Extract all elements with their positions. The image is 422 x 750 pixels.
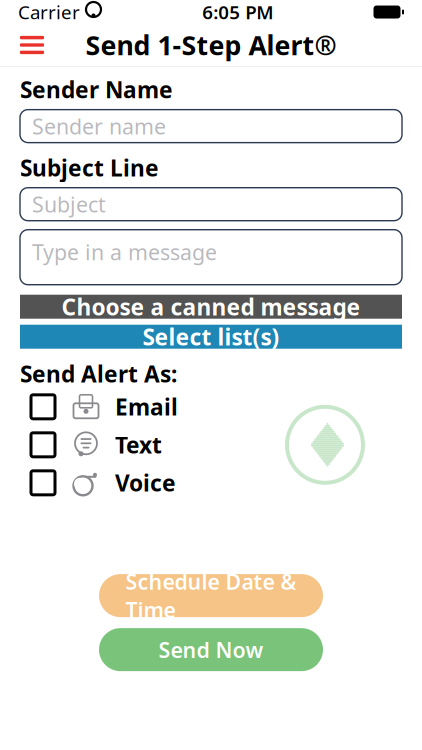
staticText: Select list(s) [142,322,279,352]
staticText: Choose a canned message [61,292,360,322]
button[interactable]: Menu [10,25,54,65]
button[interactable]: Schedule Date & Time [99,574,323,617]
staticText: 6:05 PM [202,0,273,24]
staticText: Send Alert As: [20,359,177,389]
staticText: Sender Name [20,74,173,105]
staticText: Type in a message [32,238,217,266]
button[interactable]: Select list(s) [0,325,422,349]
staticText: Email [115,392,178,422]
staticText: Schedule Date & Time [125,567,296,624]
staticText: Sender name [32,112,166,140]
staticText: Voice [115,468,176,498]
button[interactable]: Email [31,394,181,420]
staticText: Subject Line [20,153,159,183]
button[interactable]: Text [31,432,181,458]
staticText: Send Now [158,635,263,664]
button[interactable]: Choose a canned message [0,295,422,319]
staticText: Carrier [18,0,80,24]
staticText: Subject [32,190,106,218]
button[interactable]: Voice [31,470,181,496]
button[interactable]: Play [282,402,368,488]
staticText: Text [115,430,162,460]
button[interactable]: Send Now [99,628,323,671]
staticText: Send 1-Step Alert® [85,27,336,63]
